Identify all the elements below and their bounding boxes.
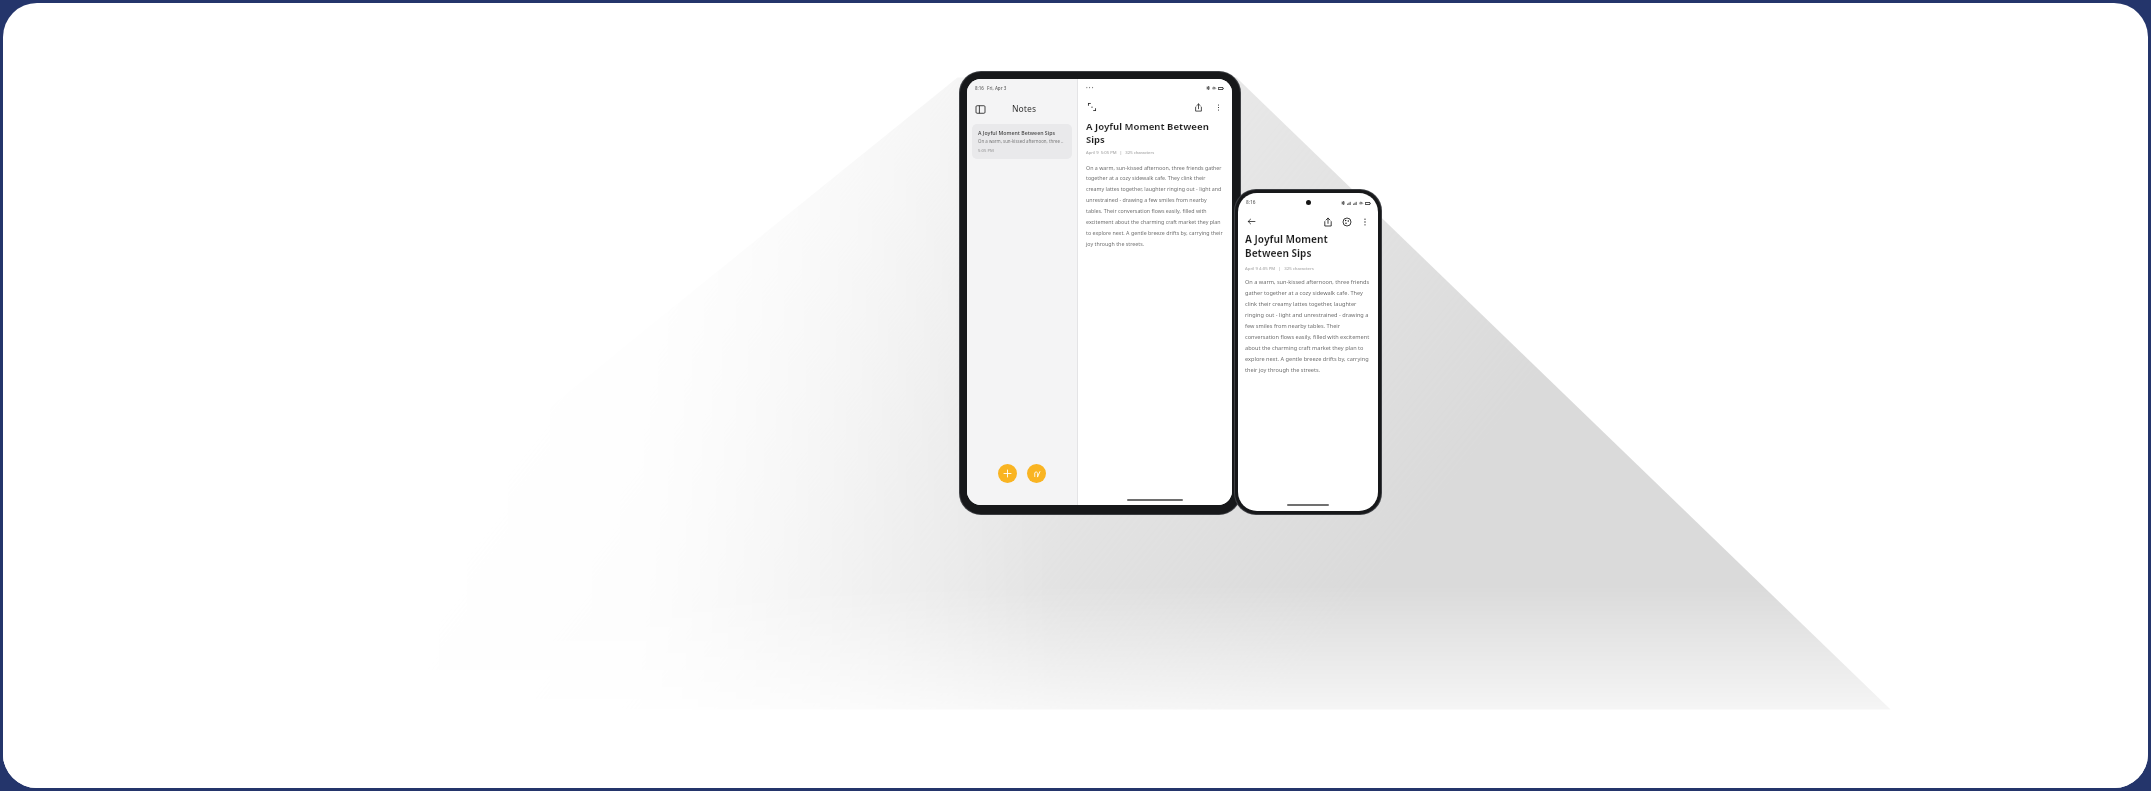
button[interactable]: Toggle sidebar (974, 103, 987, 116)
staticText: 8:16 (975, 85, 984, 91)
button[interactable]: New note (998, 464, 1017, 483)
staticText: A Joyful Moment Between Sips (978, 129, 1055, 136)
button[interactable]: Share (1321, 215, 1334, 228)
staticText: Notes (1012, 103, 1037, 115)
button[interactable]: A Joyful Moment Between Sips (972, 124, 1072, 159)
staticText: A Joyful Moment Between Sips (1245, 232, 1371, 260)
button[interactable]: Theme (1340, 215, 1353, 228)
staticText: A Joyful Moment Between Sips (1086, 120, 1224, 146)
staticText: Fri, Apr 3 (987, 85, 1007, 91)
staticText: April 9 4:05 PM | 325 characters (1245, 265, 1314, 271)
button[interactable]: Expand (1086, 101, 1098, 113)
staticText: On a warm, sun-kissed afternoon, three .… (978, 138, 1064, 144)
button[interactable]: Share (1192, 101, 1204, 113)
staticText: 5:05 PM (978, 148, 994, 154)
button[interactable]: More options (1358, 215, 1371, 228)
button[interactable]: More options (1212, 101, 1224, 113)
staticText: On a warm, sun-kissed afternoon, three f… (1086, 164, 1224, 248)
button[interactable]: Handwriting note (1027, 464, 1046, 483)
staticText: • • • (1086, 85, 1094, 91)
button[interactable]: Back (1245, 215, 1258, 228)
staticText: April 9 5:05 PM | 325 characters (1086, 150, 1155, 156)
staticText: 8:16 (1246, 199, 1256, 206)
staticText: On a warm, sun-kissed afternoon, three f… (1245, 278, 1371, 374)
